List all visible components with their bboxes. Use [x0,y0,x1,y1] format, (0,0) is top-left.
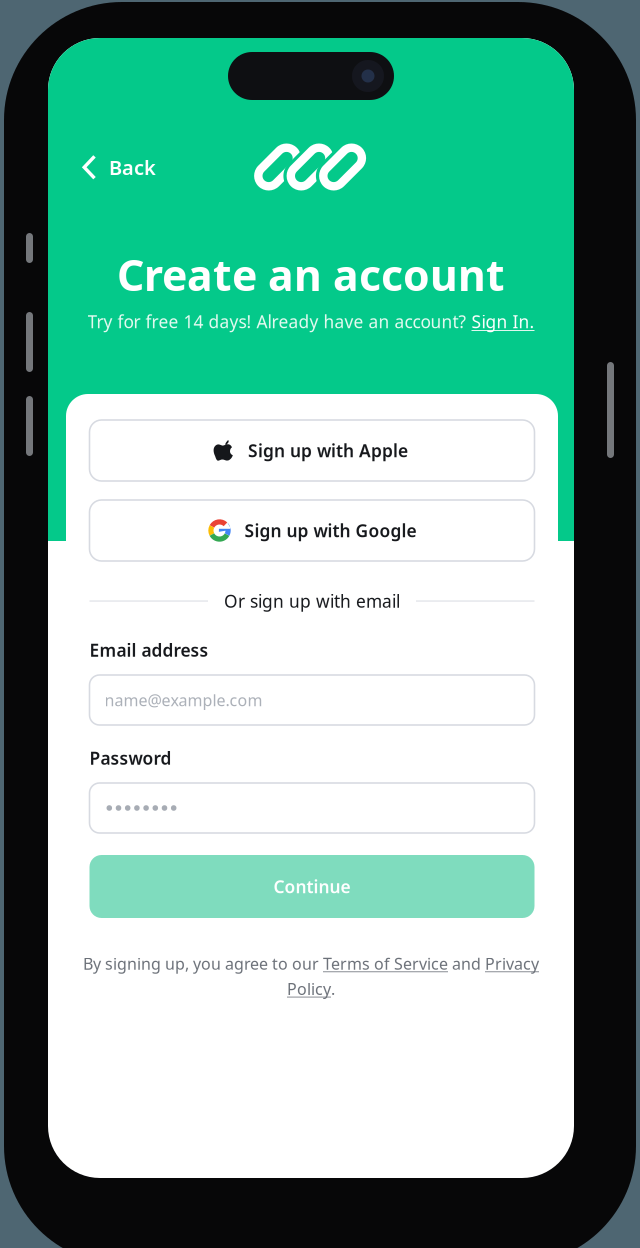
staticText: name@example.com [104,689,262,711]
staticText: Create an account [117,246,505,303]
staticText: Sign up with Google [244,519,416,542]
button[interactable]: Privacy [485,953,539,974]
staticText: Terms of Service [323,953,448,974]
button[interactable]: Sign up with Apple [89,420,534,481]
button[interactable]: Terms of Service [323,953,448,974]
staticText: Try for free 14 days! Already have an ac… [87,310,471,333]
button[interactable]: Sign up with Google [89,500,534,561]
button[interactable]: Policy [287,978,331,999]
staticText: Privacy [485,953,539,974]
staticText: Email address [89,638,208,661]
staticText: Policy [287,978,331,999]
button[interactable]: Sign In. [471,310,534,333]
staticText: Password [89,746,171,769]
staticText: Or sign up with email [224,589,400,612]
staticText: By signing up, you agree to our [83,953,323,974]
staticText: Sign up with Apple [248,439,408,462]
button[interactable]: Continue [89,855,534,918]
staticText: . [331,978,335,999]
staticText: Sign In. [471,310,534,333]
button[interactable]: Back [72,145,166,190]
staticText: Continue [273,875,350,898]
staticText: and [448,953,485,974]
staticText: Back [109,154,156,181]
